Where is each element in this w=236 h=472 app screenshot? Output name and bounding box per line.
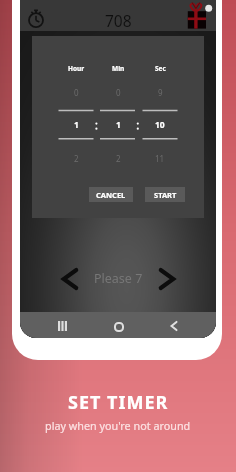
staticText: SET TIMER: [68, 390, 169, 414]
button[interactable]: Gift: [186, 2, 212, 30]
staticText: 1: [74, 119, 79, 131]
button[interactable]: SET TIMER: [0, 390, 236, 414]
staticText: 0: [74, 87, 79, 98]
button[interactable]: Previous: [57, 265, 83, 293]
button[interactable]: START: [145, 187, 185, 202]
button[interactable]: Home: [106, 314, 132, 338]
staticText: 11: [155, 153, 165, 164]
button[interactable]: Recent apps: [49, 313, 75, 338]
button[interactable]: Stopwatch: [23, 7, 49, 33]
staticText: Sec: [155, 64, 166, 73]
button[interactable]: Back: [161, 313, 187, 338]
staticText: 9: [158, 87, 163, 98]
staticText: Min: [112, 64, 125, 73]
staticText: 708: [105, 10, 132, 31]
staticText: 1: [116, 119, 121, 131]
staticText: play when you're not around: [45, 418, 191, 433]
staticText: 2: [116, 153, 121, 164]
button[interactable]: CANCEL: [89, 187, 133, 202]
staticText: START: [154, 190, 177, 200]
button[interactable]: Next: [154, 265, 180, 293]
staticText: 0: [116, 87, 121, 98]
staticText: Please 7: [94, 270, 143, 287]
staticText: Hour: [68, 64, 85, 73]
staticText: CANCEL: [96, 190, 126, 200]
staticText: 10: [155, 119, 165, 131]
staticText: 2: [74, 153, 79, 164]
